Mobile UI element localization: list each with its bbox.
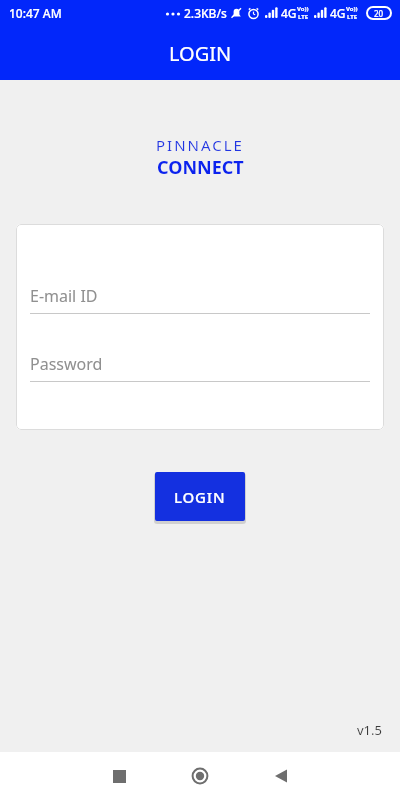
staticText: Vo)) [346, 5, 358, 13]
staticText: 2.3KB/s [184, 5, 227, 21]
button[interactable]: Password [30, 353, 370, 382]
staticText: PINNACLE [156, 135, 244, 155]
staticText: Password [30, 353, 103, 375]
staticText: v1.5 [357, 721, 382, 739]
staticText: CONNECT [157, 155, 244, 180]
staticText: LOGIN [169, 40, 232, 67]
staticText: 4G [281, 5, 297, 21]
staticText: LTE [298, 13, 309, 21]
staticText: LOGIN [174, 487, 226, 507]
staticText: Vo)) [297, 5, 309, 13]
staticText: 20 [374, 8, 384, 19]
button[interactable]: E-mail ID [30, 285, 370, 314]
staticText: 10:47 AM [9, 5, 62, 21]
button[interactable] [186, 762, 214, 790]
staticText: E-mail ID [30, 285, 98, 307]
staticText: LTE [347, 13, 358, 21]
button[interactable] [267, 762, 295, 790]
staticText: 4G [330, 5, 346, 21]
button[interactable]: LOGIN [155, 472, 245, 521]
button[interactable] [105, 762, 133, 790]
